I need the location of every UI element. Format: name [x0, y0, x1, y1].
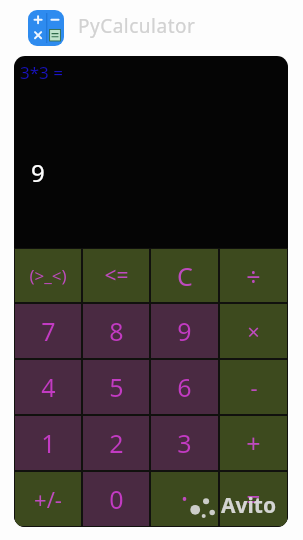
button[interactable]: = [220, 472, 287, 526]
staticText: × [247, 316, 260, 346]
staticText: (>_<) [29, 264, 67, 287]
staticText: • [181, 488, 188, 510]
staticText: 2 [109, 426, 124, 460]
button[interactable]: • [151, 472, 218, 526]
staticText: 6 [177, 370, 192, 404]
staticText: 7 [41, 314, 56, 348]
staticText: = [246, 482, 261, 516]
staticText: ÷ [246, 259, 261, 293]
staticText: 3 [177, 426, 192, 460]
staticText: - [250, 372, 258, 402]
staticText: 9 [177, 314, 192, 348]
button[interactable]: 7 [15, 304, 81, 358]
button[interactable]: - [220, 360, 287, 414]
staticText: 3*3 = [20, 61, 63, 84]
button[interactable]: 9 [151, 304, 218, 358]
button[interactable]: 3 [151, 416, 218, 470]
staticText: 9 [31, 156, 45, 189]
button[interactable]: × [220, 304, 287, 358]
staticText: Avito [221, 491, 277, 520]
staticText: PyCalculator [78, 13, 196, 39]
button[interactable]: + [220, 416, 287, 470]
button[interactable]: +/- [15, 472, 81, 526]
button[interactable]: 6 [151, 360, 218, 414]
button[interactable]: 1 [15, 416, 81, 470]
button[interactable]: C [151, 249, 218, 302]
staticText: 0 [109, 482, 124, 516]
other: PyCalculator app icon [28, 10, 64, 46]
staticText: + [246, 426, 261, 460]
button[interactable]: 0 [83, 472, 149, 526]
button[interactable]: ÷ [220, 249, 287, 302]
button[interactable]: 5 [83, 360, 149, 414]
staticText: 8 [109, 314, 124, 348]
staticText: <= [104, 261, 129, 290]
button[interactable]: (>_<) [15, 249, 81, 302]
button[interactable]: <= [83, 249, 149, 302]
button[interactable]: 8 [83, 304, 149, 358]
staticText: +/- [34, 484, 62, 514]
staticText: C [177, 259, 193, 293]
staticText: 1 [41, 426, 56, 460]
staticText: 4 [41, 370, 56, 404]
button[interactable]: 2 [83, 416, 149, 470]
button[interactable]: 4 [15, 360, 81, 414]
staticText: 5 [109, 370, 124, 404]
